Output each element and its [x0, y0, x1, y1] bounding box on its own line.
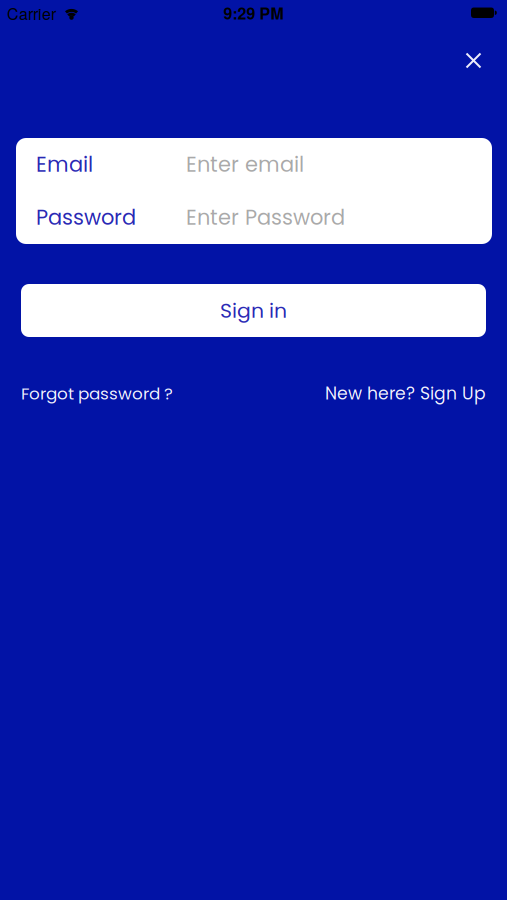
staticText: New here? Sign Up — [325, 381, 486, 406]
staticText: Enter Password — [186, 203, 345, 232]
staticText: Password — [36, 203, 136, 232]
staticText: Carrier — [7, 1, 56, 24]
staticText: Enter email — [186, 150, 304, 179]
staticText: Sign in — [220, 296, 287, 325]
button[interactable]: Sign in — [21, 284, 486, 337]
staticText: Email — [36, 150, 93, 179]
staticText: 9:29 PM — [223, 1, 283, 24]
button[interactable]: Close — [466, 53, 481, 68]
staticText: Forgot password ? — [21, 382, 173, 405]
button[interactable]: Forgot password ? — [21, 382, 173, 405]
button[interactable]: New here? Sign Up — [325, 381, 486, 406]
